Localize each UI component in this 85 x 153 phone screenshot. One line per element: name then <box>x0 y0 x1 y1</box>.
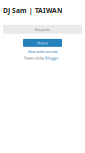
staticText: DJ Sam | TAIWAN <box>3 6 62 15</box>
staticText: . <box>60 55 61 60</box>
button[interactable]: Blogger <box>45 55 59 60</box>
staticText: No posts. <box>34 27 50 32</box>
staticText: Home <box>37 40 48 45</box>
staticText: Powered by <box>24 55 44 60</box>
button[interactable]: View web version <box>27 49 57 54</box>
staticText: Blogger <box>45 55 59 60</box>
staticText: View web version <box>27 49 57 54</box>
button[interactable]: Home <box>23 39 62 47</box>
